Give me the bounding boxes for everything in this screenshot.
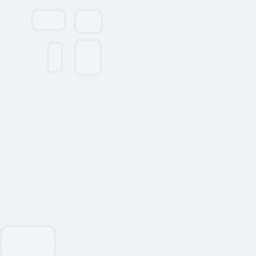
- button[interactable]: Card 4: [75, 40, 101, 75]
- button[interactable]: Card 1: [32, 10, 65, 30]
- button[interactable]: Card 3: [48, 43, 62, 72]
- button[interactable]: Card 2: [75, 10, 102, 33]
